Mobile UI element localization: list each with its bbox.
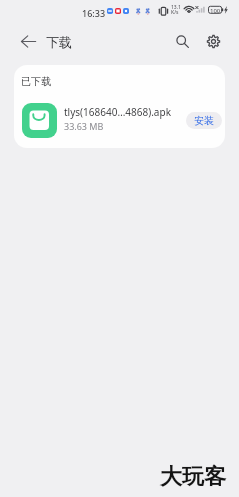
button[interactable]: tlys(168640…4868).apk bbox=[14, 95, 225, 145]
staticText: 大玩客 bbox=[160, 463, 226, 491]
staticText: 13.1 K/s bbox=[171, 4, 181, 16]
button[interactable]: Settings bbox=[199, 27, 227, 55]
staticText: 已下载 bbox=[21, 75, 51, 88]
staticText: 安装 bbox=[194, 114, 214, 127]
staticText: tlys(168640…4868).apk bbox=[64, 105, 171, 119]
staticText: 100 bbox=[210, 7, 221, 15]
staticText: 33.63 MB bbox=[64, 120, 104, 132]
button[interactable]: 安装 bbox=[186, 112, 222, 129]
button[interactable]: Search bbox=[168, 27, 196, 55]
staticText: 下载 bbox=[46, 34, 72, 50]
button[interactable]: Back bbox=[14, 27, 42, 55]
staticText: 16:33 bbox=[82, 7, 106, 19]
